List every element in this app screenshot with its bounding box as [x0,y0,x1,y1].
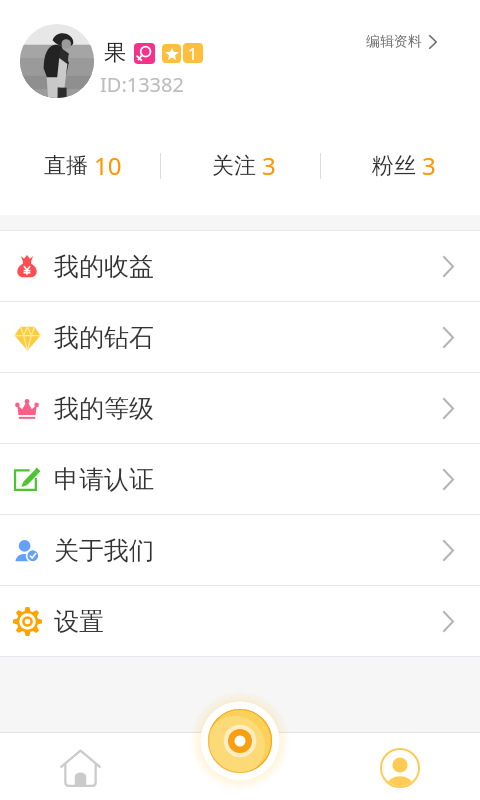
staticText: 3 [262,149,276,182]
button[interactable]: 我的收益 [0,231,480,302]
staticText: 申请认证 [54,464,154,495]
button[interactable]: 我的等级 [0,373,480,444]
staticText: 我的等级 [54,393,154,424]
button[interactable]: 我的钻石 [0,302,480,373]
button[interactable]: 编辑资料 [360,27,443,57]
button[interactable]: 申请认证 [0,444,480,515]
button[interactable]: 直播 [0,130,160,201]
staticText: 粉丝 [372,152,416,180]
staticText: 设置 [54,606,104,637]
staticText: 我的收益 [54,251,154,282]
button[interactable]: 关于我们 [0,515,480,586]
button[interactable]: 首页 [0,736,160,800]
button[interactable]: 粉丝 [321,130,480,201]
button[interactable]: 开播 [190,691,290,759]
staticText: 编辑资料 [366,33,422,51]
button[interactable]: 头像 [20,24,94,98]
staticText: 3 [422,149,436,182]
staticText: 直播 [44,152,88,180]
staticText: 果 [104,39,126,67]
button[interactable]: 关注 [161,130,320,201]
staticText: 关注 [212,152,256,180]
staticText: 关于我们 [54,535,154,566]
staticText: 1 [188,43,198,63]
staticText: ID:13382 [100,71,184,98]
button[interactable]: 我的 [320,736,480,800]
staticText: 我的钻石 [54,322,154,353]
button[interactable]: 设置 [0,586,480,657]
staticText: 10 [94,149,122,182]
